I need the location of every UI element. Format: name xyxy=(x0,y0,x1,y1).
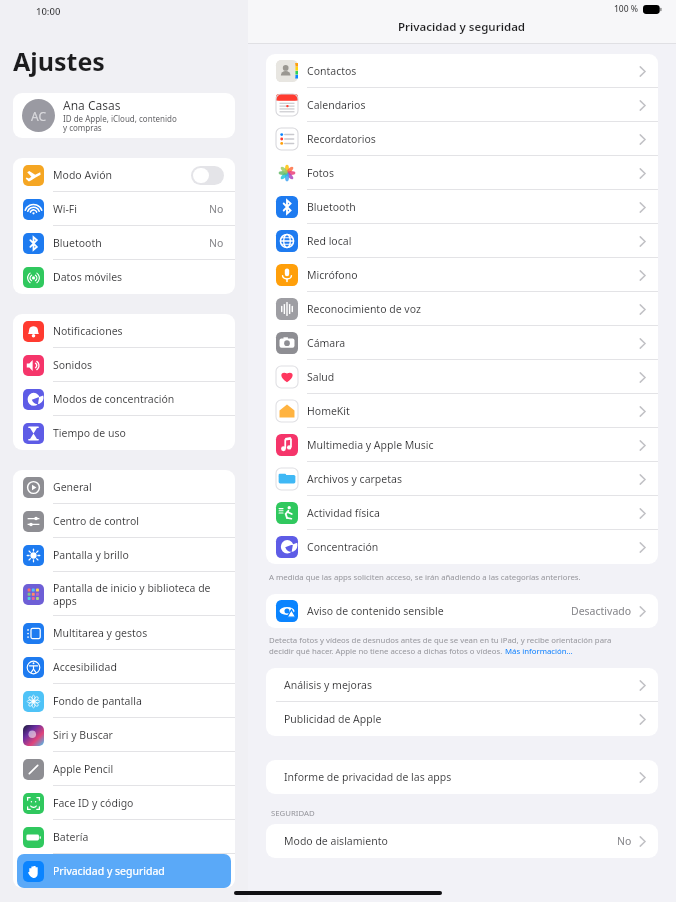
staticText: No xyxy=(617,834,632,848)
button[interactable]: Pantalla de inicio y biblioteca de apps xyxy=(13,572,235,616)
staticText: Red local xyxy=(307,234,639,248)
staticText: General xyxy=(53,480,224,494)
button[interactable]: Publicidad de Apple xyxy=(266,702,658,736)
button[interactable]: Accesibilidad xyxy=(13,650,235,684)
button[interactable]: Batería xyxy=(13,820,235,854)
staticText: HomeKit xyxy=(307,404,639,418)
staticText: Notificaciones xyxy=(53,324,224,338)
staticText: Pantalla y brillo xyxy=(53,548,224,562)
button[interactable]: Notificaciones xyxy=(13,314,235,348)
button[interactable]: Apple Pencil xyxy=(13,752,235,786)
button[interactable]: Siri y Buscar xyxy=(13,718,235,752)
staticText: Modo Avión xyxy=(53,168,191,182)
staticText: SEGURIDAD xyxy=(271,808,315,819)
staticText: Fotos xyxy=(307,166,639,180)
button[interactable]: Aviso de contenido sensible xyxy=(266,594,658,628)
button[interactable]: Modo de aislamiento xyxy=(266,824,658,858)
staticText: Apple Pencil xyxy=(53,762,224,776)
staticText: Detecta fotos y vídeos de desnudos antes… xyxy=(269,635,612,646)
staticText: Multitarea y gestos xyxy=(53,626,224,640)
staticText: Publicidad de Apple xyxy=(284,712,639,726)
button[interactable]: Sonidos xyxy=(13,348,235,382)
staticText: Actividad física xyxy=(307,506,639,520)
staticText: Bluetooth xyxy=(307,200,639,214)
button[interactable]: Privacidad y seguridad xyxy=(17,854,231,888)
button[interactable]: Fotos xyxy=(266,156,658,190)
button[interactable]: AC xyxy=(13,93,235,138)
staticText: Privacidad y seguridad xyxy=(398,19,526,35)
button[interactable]: Informe de privacidad de las apps xyxy=(266,760,658,794)
button[interactable]: Pantalla y brillo xyxy=(13,538,235,572)
button[interactable]: Bluetooth xyxy=(266,190,658,224)
staticText: Ana Casas xyxy=(63,97,121,113)
staticText: Informe de privacidad de las apps xyxy=(284,770,639,784)
staticText: Aviso de contenido sensible xyxy=(307,604,571,618)
staticText: Multimedia y Apple Music xyxy=(307,438,639,452)
staticText: A medida que las apps soliciten acceso, … xyxy=(269,572,581,583)
button[interactable]: Face ID y código xyxy=(13,786,235,820)
button[interactable]: Tiempo de uso xyxy=(13,416,235,450)
staticText: Datos móviles xyxy=(53,270,224,284)
button[interactable]: Archivos y carpetas xyxy=(266,462,658,496)
staticText: Micrófono xyxy=(307,268,639,282)
button[interactable]: Centro de control xyxy=(13,504,235,538)
button[interactable]: Concentración xyxy=(266,530,658,564)
staticText: AC xyxy=(31,108,47,124)
button[interactable]: Recordatorios xyxy=(266,122,658,156)
button[interactable]: Más información… xyxy=(505,646,573,657)
staticText: Wi-Fi xyxy=(53,202,209,216)
staticText: No xyxy=(209,202,224,216)
button[interactable]: Modo Avión xyxy=(191,166,224,185)
button[interactable]: Modo Avión xyxy=(13,158,235,192)
staticText: Contactos xyxy=(307,64,639,78)
staticText: Modos de concentración xyxy=(53,392,224,406)
button[interactable]: Multimedia y Apple Music xyxy=(266,428,658,462)
staticText: Batería xyxy=(53,830,224,844)
button[interactable]: Modos de concentración xyxy=(13,382,235,416)
staticText: Centro de control xyxy=(53,514,224,528)
staticText: Desactivado xyxy=(571,604,632,618)
staticText: Pantalla de inicio y biblioteca de apps xyxy=(53,581,224,608)
staticText: Análisis y mejoras xyxy=(284,678,639,692)
button[interactable]: Salud xyxy=(266,360,658,394)
button[interactable]: Calendarios xyxy=(266,88,658,122)
button[interactable]: Multitarea y gestos xyxy=(13,616,235,650)
button[interactable]: Contactos xyxy=(266,54,658,88)
staticText: Face ID y código xyxy=(53,796,224,810)
button[interactable]: Wi-Fi xyxy=(13,192,235,226)
staticText: Reconocimiento de voz xyxy=(307,302,639,316)
staticText: Fondo de pantalla xyxy=(53,694,224,708)
staticText: Accesibilidad xyxy=(53,660,224,674)
button[interactable]: General xyxy=(13,470,235,504)
staticText: Salud xyxy=(307,370,639,384)
button[interactable]: Bluetooth xyxy=(13,226,235,260)
staticText: 100 % xyxy=(614,3,639,15)
staticText: Recordatorios xyxy=(307,132,639,146)
staticText: Sonidos xyxy=(53,358,224,372)
staticText: Siri y Buscar xyxy=(53,728,224,742)
button[interactable]: Datos móviles xyxy=(13,260,235,294)
button[interactable]: Reconocimiento de voz xyxy=(266,292,658,326)
staticText: Bluetooth xyxy=(53,236,209,250)
staticText: Privacidad y seguridad xyxy=(53,864,220,878)
staticText: ID de Apple, iCloud, contenido y compras xyxy=(63,113,177,134)
staticText: Archivos y carpetas xyxy=(307,472,639,486)
button[interactable]: Fondo de pantalla xyxy=(13,684,235,718)
button[interactable]: Red local xyxy=(266,224,658,258)
button[interactable]: Análisis y mejoras xyxy=(266,668,658,702)
button[interactable]: HomeKit xyxy=(266,394,658,428)
button[interactable]: Micrófono xyxy=(266,258,658,292)
staticText: Concentración xyxy=(307,540,639,554)
staticText: Modo de aislamiento xyxy=(284,834,617,848)
staticText: Cámara xyxy=(307,336,639,350)
staticText: Calendarios xyxy=(307,98,639,112)
button[interactable]: Cámara xyxy=(266,326,658,360)
staticText: No xyxy=(209,236,224,250)
staticText: Ajustes xyxy=(13,44,105,78)
staticText: 10:00 xyxy=(36,5,61,18)
staticText: decidir qué hacer. Apple no tiene acceso… xyxy=(269,646,505,657)
staticText: Tiempo de uso xyxy=(53,426,224,440)
button[interactable]: Actividad física xyxy=(266,496,658,530)
